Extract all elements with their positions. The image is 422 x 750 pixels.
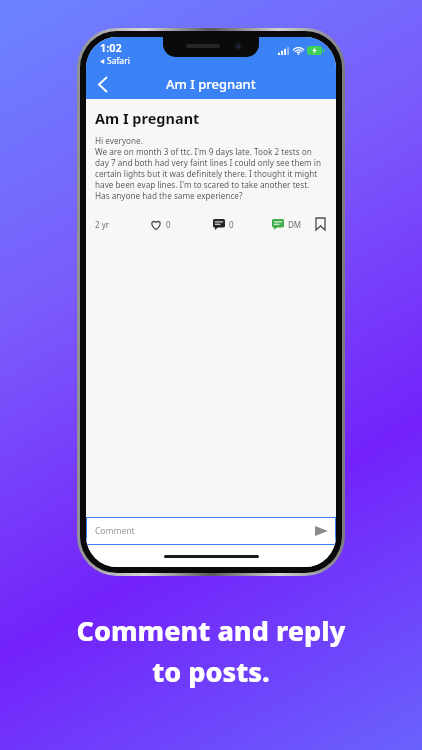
staticText: Am I pregnant [166,75,256,93]
staticText: Am I pregnant [95,108,200,128]
button[interactable]: Back [86,69,120,99]
staticText: Safari [107,55,130,67]
staticText: 1:02 [100,40,122,55]
staticText: Hi everyone. We are on month 3 of ttc. I… [95,135,327,201]
staticText: 0 [166,219,171,230]
staticText: Comment [95,525,135,537]
button[interactable]: Send [315,526,328,536]
staticText: to posts. [152,653,270,690]
staticText: DM [288,219,302,230]
button[interactable]: DM [270,217,304,232]
button[interactable]: Bookmark [314,216,327,232]
staticText: Comment and reply [76,612,346,649]
staticText: 2 yr [95,219,110,230]
button[interactable]: Comment [86,517,336,545]
button[interactable]: 0 [211,217,236,232]
button[interactable]: 0 [148,217,173,232]
staticText: 0 [229,219,234,230]
